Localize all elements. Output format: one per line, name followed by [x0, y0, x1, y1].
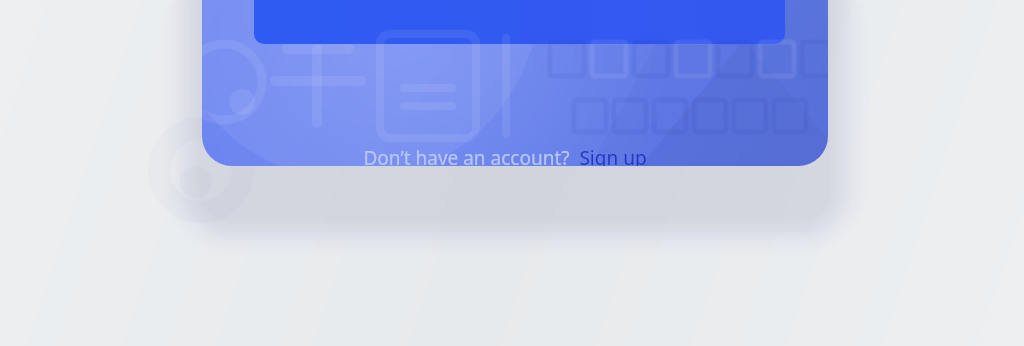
staticText: Don’t have an account? [363, 145, 570, 166]
button[interactable]: Login [254, 0, 785, 44]
staticText: Sign up [579, 145, 647, 166]
button[interactable]: Sign up [579, 145, 647, 166]
